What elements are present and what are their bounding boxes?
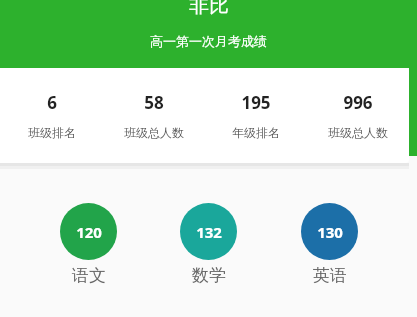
staticText: 班级总人数	[328, 125, 388, 140]
other: 数学	[180, 203, 237, 260]
staticText: 58	[144, 91, 164, 114]
staticText: 120	[76, 222, 102, 242]
button[interactable]: 195	[205, 68, 307, 163]
staticText: 年级排名	[232, 125, 280, 140]
staticText: 130	[317, 222, 343, 242]
staticText: 数学	[192, 265, 226, 286]
other: 语文	[60, 203, 117, 260]
button[interactable]: 英语	[297, 203, 362, 286]
button[interactable]: 语文	[56, 203, 121, 286]
button[interactable]: 996	[307, 68, 409, 163]
button[interactable]: 6	[0, 68, 409, 163]
staticText: 英语	[313, 265, 347, 286]
staticText: 高一第一次月考成绩	[150, 33, 267, 49]
other: 英语	[301, 203, 358, 260]
button[interactable]: 非比	[183, 0, 235, 18]
staticText: 132	[196, 222, 222, 242]
staticText: 非比	[189, 0, 229, 18]
staticText: 班级排名	[28, 125, 76, 140]
staticText: 996	[343, 91, 373, 114]
button[interactable]: 6	[0, 68, 103, 163]
button[interactable]: 数学	[176, 203, 241, 286]
staticText: 语文	[72, 265, 106, 286]
staticText: 6	[47, 91, 57, 114]
staticText: 班级总人数	[124, 125, 184, 140]
button[interactable]: 58	[103, 68, 205, 163]
staticText: 195	[241, 91, 271, 114]
